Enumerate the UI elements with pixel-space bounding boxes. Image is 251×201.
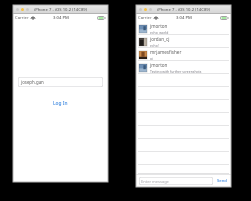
staticText: oi <box>150 56 153 61</box>
other: Avatar <box>139 51 147 59</box>
button[interactable]: Avatar <box>136 61 231 74</box>
button[interactable]: Enter message <box>139 177 213 185</box>
staticText: jordan_cj <box>150 36 170 42</box>
button[interactable]: Minimize <box>144 8 147 11</box>
staticText: mrjamesfisher <box>150 49 182 55</box>
staticText: 3:04 PM <box>53 15 69 21</box>
button[interactable]: Zoom <box>149 8 152 11</box>
button[interactable]: Close <box>139 8 142 11</box>
button[interactable]: Zoom <box>26 8 29 11</box>
button[interactable]: Avatar <box>136 22 231 35</box>
button[interactable]: Send <box>216 177 228 185</box>
staticText: joseph.gan <box>21 79 44 85</box>
staticText: Enter message <box>141 179 169 184</box>
button[interactable] <box>136 126 231 139</box>
button[interactable] <box>136 100 231 113</box>
staticText: Send <box>217 178 227 184</box>
button[interactable] <box>136 165 231 174</box>
button[interactable]: Avatar <box>136 48 231 61</box>
button[interactable]: Avatar <box>136 35 231 48</box>
other: Avatar <box>139 38 147 46</box>
staticText: iPhone 7 - iOS 10.2 (14C89) <box>34 7 87 13</box>
staticText: echo! <box>150 43 159 48</box>
other: Avatar <box>139 25 147 33</box>
button[interactable]: joseph.gan <box>18 77 103 87</box>
button[interactable] <box>136 113 231 126</box>
button[interactable] <box>136 139 231 152</box>
staticText: Log In <box>53 100 68 107</box>
button[interactable] <box>136 74 231 87</box>
staticText: Testing with further screenshots <box>150 69 202 74</box>
staticText: iPhone 7 - iOS 10.2 (14C89) <box>157 7 210 13</box>
staticText: Carrier <box>138 15 152 21</box>
staticText: Carrier <box>15 15 29 21</box>
staticText: 3:04 PM <box>176 15 192 21</box>
staticText: jmorton <box>150 23 168 29</box>
button[interactable] <box>136 87 231 100</box>
staticText: echo_world <box>150 30 169 35</box>
button[interactable] <box>136 152 231 165</box>
button[interactable]: Minimize <box>21 8 24 11</box>
other: Avatar <box>139 64 147 72</box>
staticText: jmorton <box>150 62 168 68</box>
button[interactable]: Log In <box>49 99 72 108</box>
button[interactable]: Close <box>16 8 19 11</box>
